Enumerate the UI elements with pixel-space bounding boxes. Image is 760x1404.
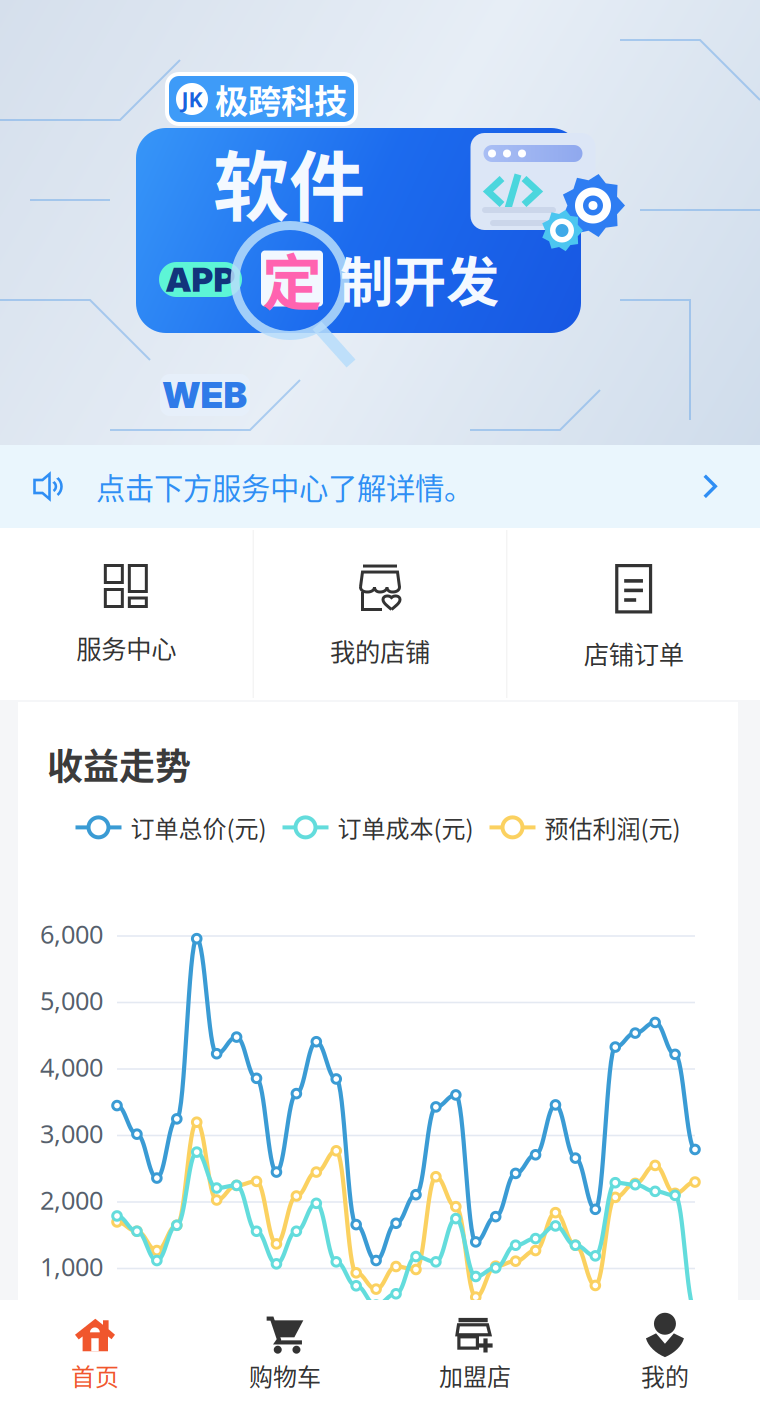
staticText: WEB <box>162 373 247 417</box>
button[interactable]: 点击下方服务中心了解详情。 <box>0 445 760 528</box>
staticText: 6,000 <box>40 917 103 951</box>
staticText: APP <box>165 259 235 300</box>
staticText: 加盟店 <box>439 1358 511 1393</box>
button[interactable]: 购物车 <box>190 1300 380 1404</box>
staticText: 首页 <box>71 1358 119 1393</box>
staticText: JK <box>181 85 202 113</box>
staticText: 点击下方服务中心了解详情。 <box>96 465 473 508</box>
staticText: 服务中心 <box>76 629 176 666</box>
staticText: 我的店铺 <box>330 632 430 669</box>
staticText: 软件 <box>213 126 365 236</box>
staticText: 订单成本(元) <box>337 810 473 845</box>
button[interactable]: 我的店铺 <box>254 528 506 700</box>
staticText: 4,000 <box>40 1050 103 1084</box>
staticText: 2,000 <box>40 1183 103 1217</box>
staticText: 订单总价(元) <box>130 810 266 845</box>
button[interactable]: 我的 <box>570 1300 760 1404</box>
button[interactable]: 服务中心 <box>0 528 253 700</box>
staticText: 定 <box>262 235 322 322</box>
button[interactable]: 店铺订单 <box>507 528 760 700</box>
staticText: 5,000 <box>40 984 103 1017</box>
button[interactable]: 首页 <box>0 1300 190 1404</box>
staticText: 制开发 <box>340 240 499 317</box>
staticText: 预估利润(元) <box>544 810 680 845</box>
staticText: 我的 <box>641 1358 689 1393</box>
staticText: 3,000 <box>40 1117 103 1150</box>
button[interactable]: 加盟店 <box>380 1300 570 1404</box>
staticText: 1,000 <box>40 1250 103 1283</box>
staticText: 店铺订单 <box>584 634 684 671</box>
staticText: 极跨科技 <box>215 75 347 123</box>
staticText: 收益走势 <box>47 738 191 790</box>
staticText: 购物车 <box>249 1358 321 1393</box>
